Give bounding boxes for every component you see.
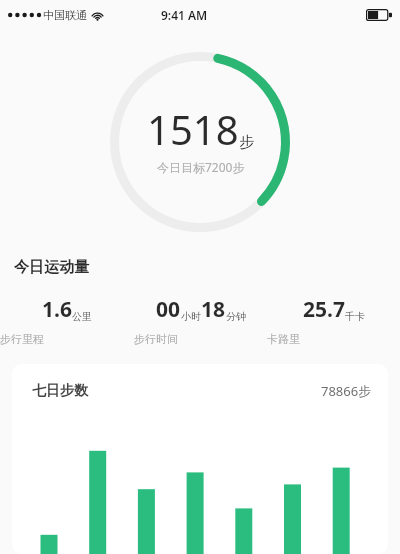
staticText: 千卡: [345, 310, 365, 323]
staticText: 步行时间: [134, 332, 267, 346]
staticText: 25.7: [303, 295, 345, 324]
staticText: 1.6: [42, 295, 72, 324]
staticText: 步行里程: [0, 332, 134, 346]
staticText: 1518: [147, 102, 239, 156]
staticText: 小时: [181, 310, 201, 323]
staticText: 78866步: [321, 382, 372, 400]
staticText: 中国联通: [43, 8, 87, 22]
staticText: 公里: [72, 310, 92, 323]
staticText: 七日步数: [32, 382, 88, 400]
staticText: 00: [156, 295, 181, 324]
staticText: 卡路里: [267, 332, 400, 346]
button[interactable]: 七日步数: [12, 364, 388, 554]
staticText: 步: [239, 133, 254, 152]
staticText: 今日运动量: [14, 258, 89, 277]
button[interactable]: 1.6: [0, 295, 134, 346]
staticText: 今日目标7200步: [157, 159, 245, 175]
button[interactable]: 25.7: [267, 295, 400, 346]
staticText: 分钟: [226, 310, 246, 323]
staticText: 9:41 AM: [161, 7, 208, 23]
staticText: 18: [201, 295, 226, 324]
button[interactable]: 00: [134, 295, 267, 346]
